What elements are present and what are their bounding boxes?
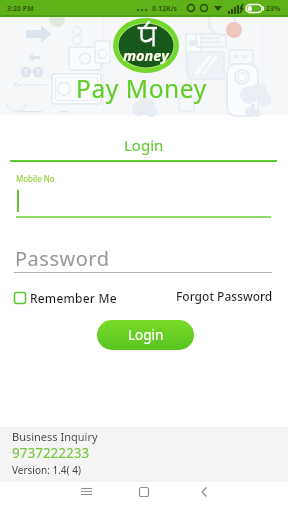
staticText: Login [128,326,164,344]
button[interactable] [133,482,155,504]
staticText: Remember Me [30,290,117,306]
button[interactable]: Login [97,320,194,350]
staticText: Pay Money [76,72,207,105]
staticText: Password [15,245,110,272]
staticText: 0.12K/s [152,4,178,14]
staticText: money [123,45,169,65]
staticText: Login [124,135,164,155]
button[interactable]: 9737222233 [12,444,90,462]
staticText: 23% [266,4,281,14]
staticText: 3:20 PM [7,4,34,14]
staticText: Business Inquiry [12,429,98,444]
staticText: Version: 1.4( 4) [12,463,81,477]
button[interactable]: Remember Me [14,290,117,306]
button[interactable]: Forgot Password [176,288,273,304]
button[interactable]: Mobile No [16,173,272,215]
button[interactable]: Password [15,245,272,272]
button[interactable] [194,482,216,504]
staticText: Mobile No [16,173,55,184]
button[interactable] [76,482,98,504]
